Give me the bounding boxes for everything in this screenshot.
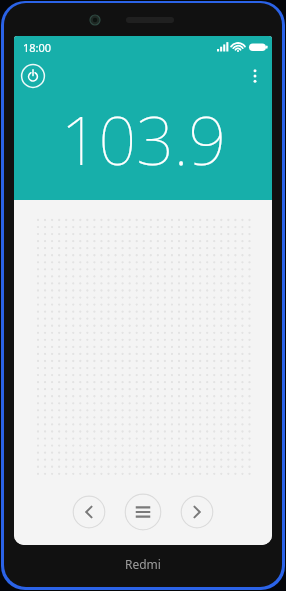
button[interactable]: Next station	[180, 495, 214, 529]
staticText: 18:00	[23, 40, 52, 55]
button[interactable]: Previous station	[72, 495, 106, 529]
button[interactable]: Power	[19, 62, 47, 90]
button[interactable]: More options	[241, 62, 269, 90]
button[interactable]: Station list	[124, 493, 162, 531]
staticText: 103.9	[61, 94, 226, 184]
staticText: Redmi	[125, 556, 161, 572]
